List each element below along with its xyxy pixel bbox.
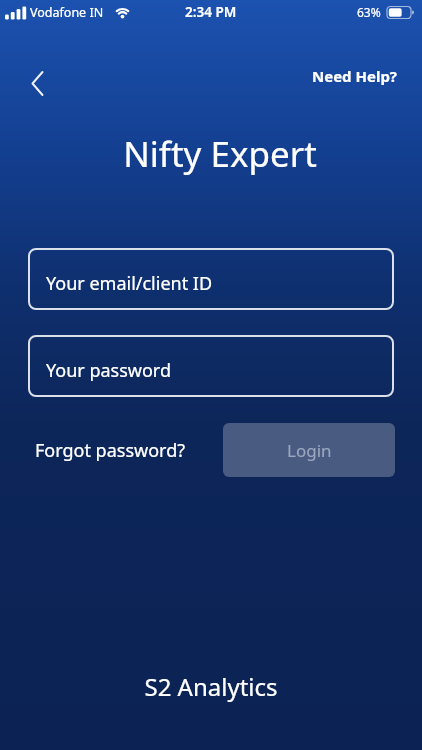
button[interactable]: Your email/client ID (28, 248, 394, 310)
staticText: Your password (46, 358, 172, 383)
staticText: Vodafone IN (30, 4, 104, 21)
staticText: Forgot password? (35, 438, 186, 463)
button[interactable]: Login (223, 423, 395, 477)
button[interactable]: Need Help? (312, 66, 398, 86)
staticText: Nifty Expert (9, 130, 422, 178)
staticText: 63% (357, 4, 381, 20)
staticText: 2:34 PM (185, 3, 237, 21)
button[interactable] (22, 66, 52, 96)
staticText: Need Help? (312, 66, 398, 86)
button[interactable]: Your password (28, 335, 394, 397)
button[interactable]: Forgot password? (35, 438, 186, 463)
staticText: Your email/client ID (46, 271, 213, 296)
staticText: S2 Analytics (0, 670, 422, 703)
staticText: Login (287, 439, 332, 462)
